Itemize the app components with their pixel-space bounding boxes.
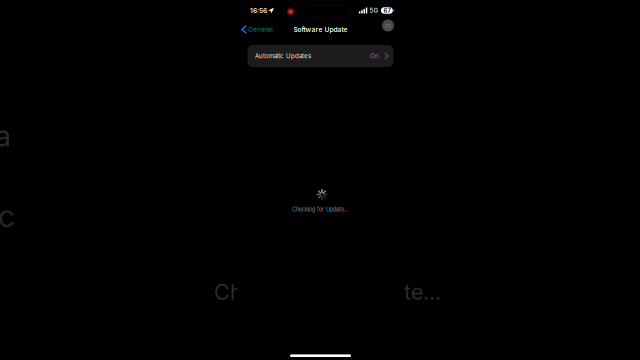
staticText: General xyxy=(248,26,273,33)
staticText: Checking for Update… xyxy=(292,206,349,213)
staticText: 67 xyxy=(383,7,390,14)
button[interactable]: Automatic Updates xyxy=(247,45,393,67)
staticText: Software Update xyxy=(293,25,347,34)
staticText: On xyxy=(370,52,379,60)
staticText: Checking for Update… xyxy=(214,279,441,305)
staticText: ic xyxy=(0,197,15,235)
button[interactable]: Account xyxy=(382,19,403,39)
staticText: Automatic Updates xyxy=(255,52,311,60)
staticText: a xyxy=(0,118,11,153)
button[interactable]: General xyxy=(237,23,273,36)
staticText: 16:56 xyxy=(250,6,267,15)
staticText: 5G xyxy=(370,7,379,14)
